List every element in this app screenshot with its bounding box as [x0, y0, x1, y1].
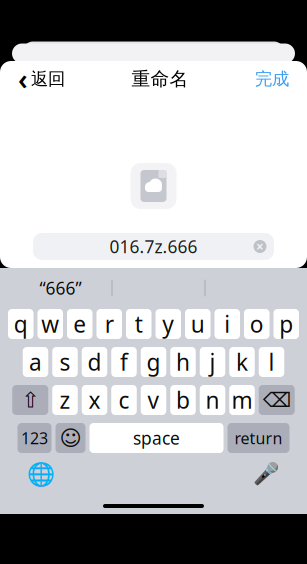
staticText: × [256, 238, 264, 255]
button[interactable]: u [185, 309, 210, 339]
staticText: 完成 [255, 68, 289, 90]
staticText: l [268, 347, 274, 377]
button[interactable]: w [37, 309, 63, 339]
staticText: d [87, 347, 101, 377]
button[interactable]: l [259, 347, 284, 377]
staticText: s [59, 347, 70, 377]
button[interactable]: g [141, 347, 166, 377]
button[interactable]: Shift [12, 385, 48, 415]
button[interactable]: space [89, 423, 223, 453]
staticText: b [176, 385, 190, 415]
staticText: t [135, 309, 143, 339]
button[interactable]: o [244, 309, 269, 339]
button[interactable]: n [200, 385, 225, 415]
button[interactable]: e [67, 309, 92, 339]
button[interactable]: 听写 [249, 459, 283, 489]
staticText: v [147, 385, 159, 415]
button[interactable]: b [170, 385, 196, 415]
staticText: ⌫ [263, 389, 291, 411]
button[interactable]: 表情符号 [55, 423, 85, 453]
button[interactable]: 数字键盘 [17, 423, 51, 453]
button[interactable]: z [52, 385, 78, 415]
staticText: h [176, 347, 190, 377]
button[interactable]: t [126, 309, 151, 339]
button[interactable]: 换行 [227, 423, 289, 453]
button[interactable]: v [141, 385, 166, 415]
staticText: e [73, 309, 86, 339]
staticText: q [14, 309, 28, 339]
button[interactable]: 删除 [259, 385, 295, 415]
button[interactable]: f [111, 347, 137, 377]
button[interactable]: m [229, 385, 255, 415]
staticText: p [279, 309, 293, 339]
staticText: m [231, 385, 252, 415]
staticText: 返回 [31, 68, 65, 90]
staticText: i [224, 309, 230, 339]
staticText: space [133, 426, 180, 449]
staticText: k [236, 347, 248, 377]
staticText: 123 [21, 427, 48, 449]
button[interactable]: a [23, 347, 48, 377]
button[interactable]: r [96, 309, 122, 339]
staticText: j [209, 347, 215, 377]
staticText: 🎤 [252, 462, 279, 486]
staticText: ☺ [59, 426, 81, 450]
staticText: ‹ [18, 60, 28, 98]
staticText: return [234, 427, 282, 449]
button[interactable]: 切换键盘 [24, 459, 58, 489]
button[interactable]: d [82, 347, 107, 377]
button[interactable]: q [8, 309, 33, 339]
button[interactable]: i [214, 309, 240, 339]
button[interactable]: ‹ [10, 54, 73, 104]
button[interactable]: 完成 [247, 62, 297, 96]
button[interactable]: k [229, 347, 255, 377]
staticText: u [191, 309, 205, 339]
staticText: “666” [39, 276, 81, 299]
button[interactable]: c [111, 385, 137, 415]
button[interactable]: 清除文本 [249, 235, 271, 257]
staticText: 🌐 [27, 461, 55, 487]
staticText: a [29, 347, 42, 377]
staticText: n [205, 385, 219, 415]
staticText: x [88, 385, 100, 415]
staticText: f [120, 347, 128, 377]
staticText: o [250, 309, 264, 339]
staticText: w [41, 309, 59, 339]
staticText: r [105, 309, 114, 339]
staticText: 016.7z.666 [109, 235, 197, 258]
button[interactable]: s [52, 347, 78, 377]
button[interactable]: “666” [9, 273, 111, 303]
staticText: ⇧ [21, 388, 39, 412]
button[interactable]: h [170, 347, 196, 377]
staticText: g [146, 347, 160, 377]
staticText: c [118, 385, 129, 415]
button[interactable]: p [273, 309, 299, 339]
staticText: y [162, 309, 174, 339]
button[interactable]: j [200, 347, 225, 377]
button[interactable]: y [155, 309, 181, 339]
staticText: z [59, 385, 70, 415]
button[interactable]: x [82, 385, 107, 415]
staticText: 重命名 [131, 67, 188, 90]
